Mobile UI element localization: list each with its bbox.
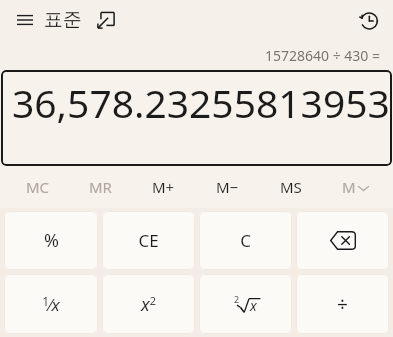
button[interactable]: C bbox=[199, 211, 292, 270]
staticText: MR bbox=[89, 177, 112, 197]
staticText: x2 bbox=[141, 292, 156, 317]
button[interactable]: M+ bbox=[132, 166, 195, 208]
button[interactable]: 1⁄x bbox=[4, 274, 98, 334]
staticText: x bbox=[250, 296, 257, 315]
staticText: M bbox=[342, 177, 356, 197]
button[interactable]: CE bbox=[102, 211, 195, 270]
other: Backspace bbox=[296, 211, 389, 270]
staticText: % bbox=[44, 228, 59, 253]
staticText: MS bbox=[280, 177, 302, 197]
staticText: ÷ bbox=[337, 291, 348, 317]
button[interactable]: MR bbox=[69, 166, 132, 208]
button[interactable]: % bbox=[4, 211, 98, 270]
staticText: 15728640 ÷ 430 = bbox=[265, 46, 381, 65]
button[interactable]: Backspace bbox=[296, 211, 389, 270]
staticText: CE bbox=[138, 229, 159, 252]
staticText: C bbox=[240, 229, 251, 252]
button[interactable]: 표준 bbox=[44, 8, 82, 32]
button[interactable]: x2 bbox=[102, 274, 195, 334]
staticText: 1⁄x bbox=[42, 293, 60, 316]
staticText: 2 bbox=[234, 293, 240, 305]
staticText: 표준 bbox=[44, 8, 82, 32]
button[interactable]: 36,578.23255813953 bbox=[1, 70, 392, 166]
button[interactable]: Keep on top bbox=[90, 4, 122, 36]
staticText: M+ bbox=[152, 177, 175, 197]
button[interactable]: M bbox=[323, 166, 387, 208]
staticText: 36,578.23255813953 bbox=[12, 76, 390, 129]
button[interactable]: MS bbox=[259, 166, 323, 208]
button[interactable]: History bbox=[351, 3, 385, 37]
button[interactable]: 2 bbox=[199, 274, 292, 334]
button[interactable]: M− bbox=[195, 166, 259, 208]
button[interactable]: ÷ bbox=[296, 274, 389, 334]
staticText: M− bbox=[216, 177, 239, 197]
staticText: MC bbox=[26, 177, 50, 197]
button[interactable]: MC bbox=[6, 166, 69, 208]
button[interactable]: Menu bbox=[8, 3, 42, 37]
